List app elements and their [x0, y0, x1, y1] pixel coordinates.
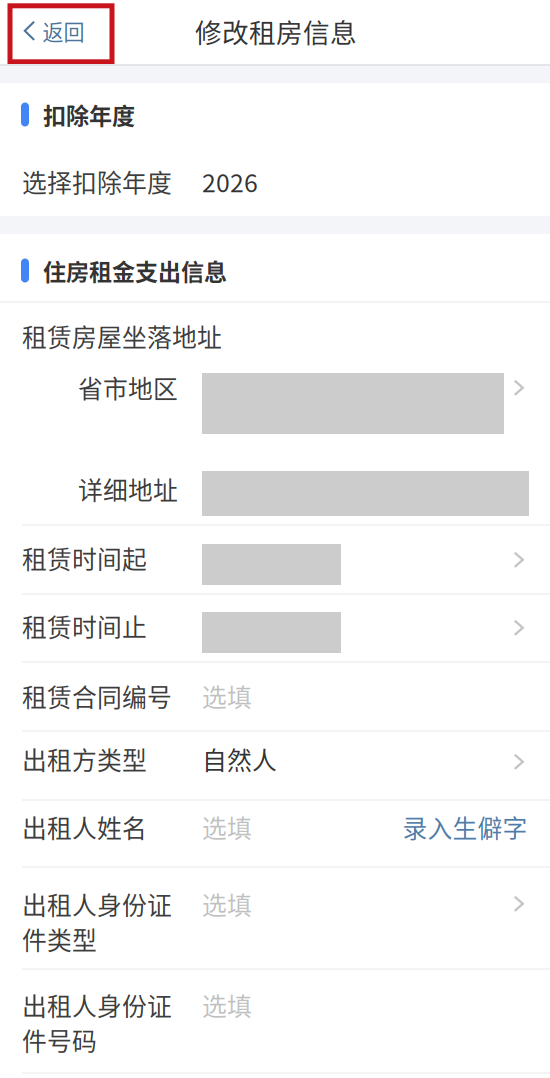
staticText: 返回: [42, 16, 84, 46]
staticText: 2026: [202, 163, 258, 199]
staticText: 件类型: [22, 921, 97, 957]
staticText: 出租方类型: [22, 741, 147, 777]
button[interactable]: 出租方类型 自然人: [0, 732, 550, 800]
staticText: 出租人身份证: [22, 987, 172, 1023]
staticText: 详细地址: [78, 471, 178, 507]
staticText: 省市地区: [78, 369, 178, 405]
staticText: 租赁时间止: [22, 608, 147, 644]
staticText: 选择扣除年度: [22, 163, 172, 199]
staticText: 选填: [202, 886, 252, 922]
button[interactable]: 选择扣除年度 2026: [0, 147, 550, 216]
staticText: 出租人身份证: [22, 886, 172, 922]
button[interactable]: 出租人姓名 选填: [0, 801, 550, 867]
button[interactable]: 录入生僻字: [392, 795, 537, 859]
button[interactable]: 租赁时间止: [0, 595, 550, 662]
button[interactable]: 详细地址: [0, 441, 550, 525]
staticText: 租赁时间起: [22, 540, 147, 576]
staticText: 租赁合同编号: [22, 678, 172, 714]
button[interactable]: 返回: [1, 0, 110, 64]
staticText: 修改租房信息: [195, 12, 357, 50]
staticText: 件号码: [22, 1022, 97, 1058]
staticText: 住房租金支出信息: [43, 254, 227, 287]
button[interactable]: 出租人身份证件号码 选填: [0, 970, 550, 1074]
staticText: 租赁房屋坐落地址: [22, 318, 222, 354]
button[interactable]: 租赁时间起: [0, 526, 550, 594]
staticText: 选填: [202, 987, 252, 1023]
button[interactable]: 省市地区: [0, 365, 550, 441]
staticText: 出租人姓名: [22, 809, 147, 845]
staticText: 选填: [202, 809, 252, 845]
button[interactable]: 租赁合同编号 选填: [0, 663, 550, 732]
button[interactable]: 出租人身份证件类型 选填: [0, 868, 550, 969]
staticText: 录入生僻字: [402, 809, 527, 845]
staticText: 选填: [202, 678, 252, 714]
staticText: 扣除年度: [43, 98, 135, 131]
staticText: 自然人: [202, 741, 277, 777]
